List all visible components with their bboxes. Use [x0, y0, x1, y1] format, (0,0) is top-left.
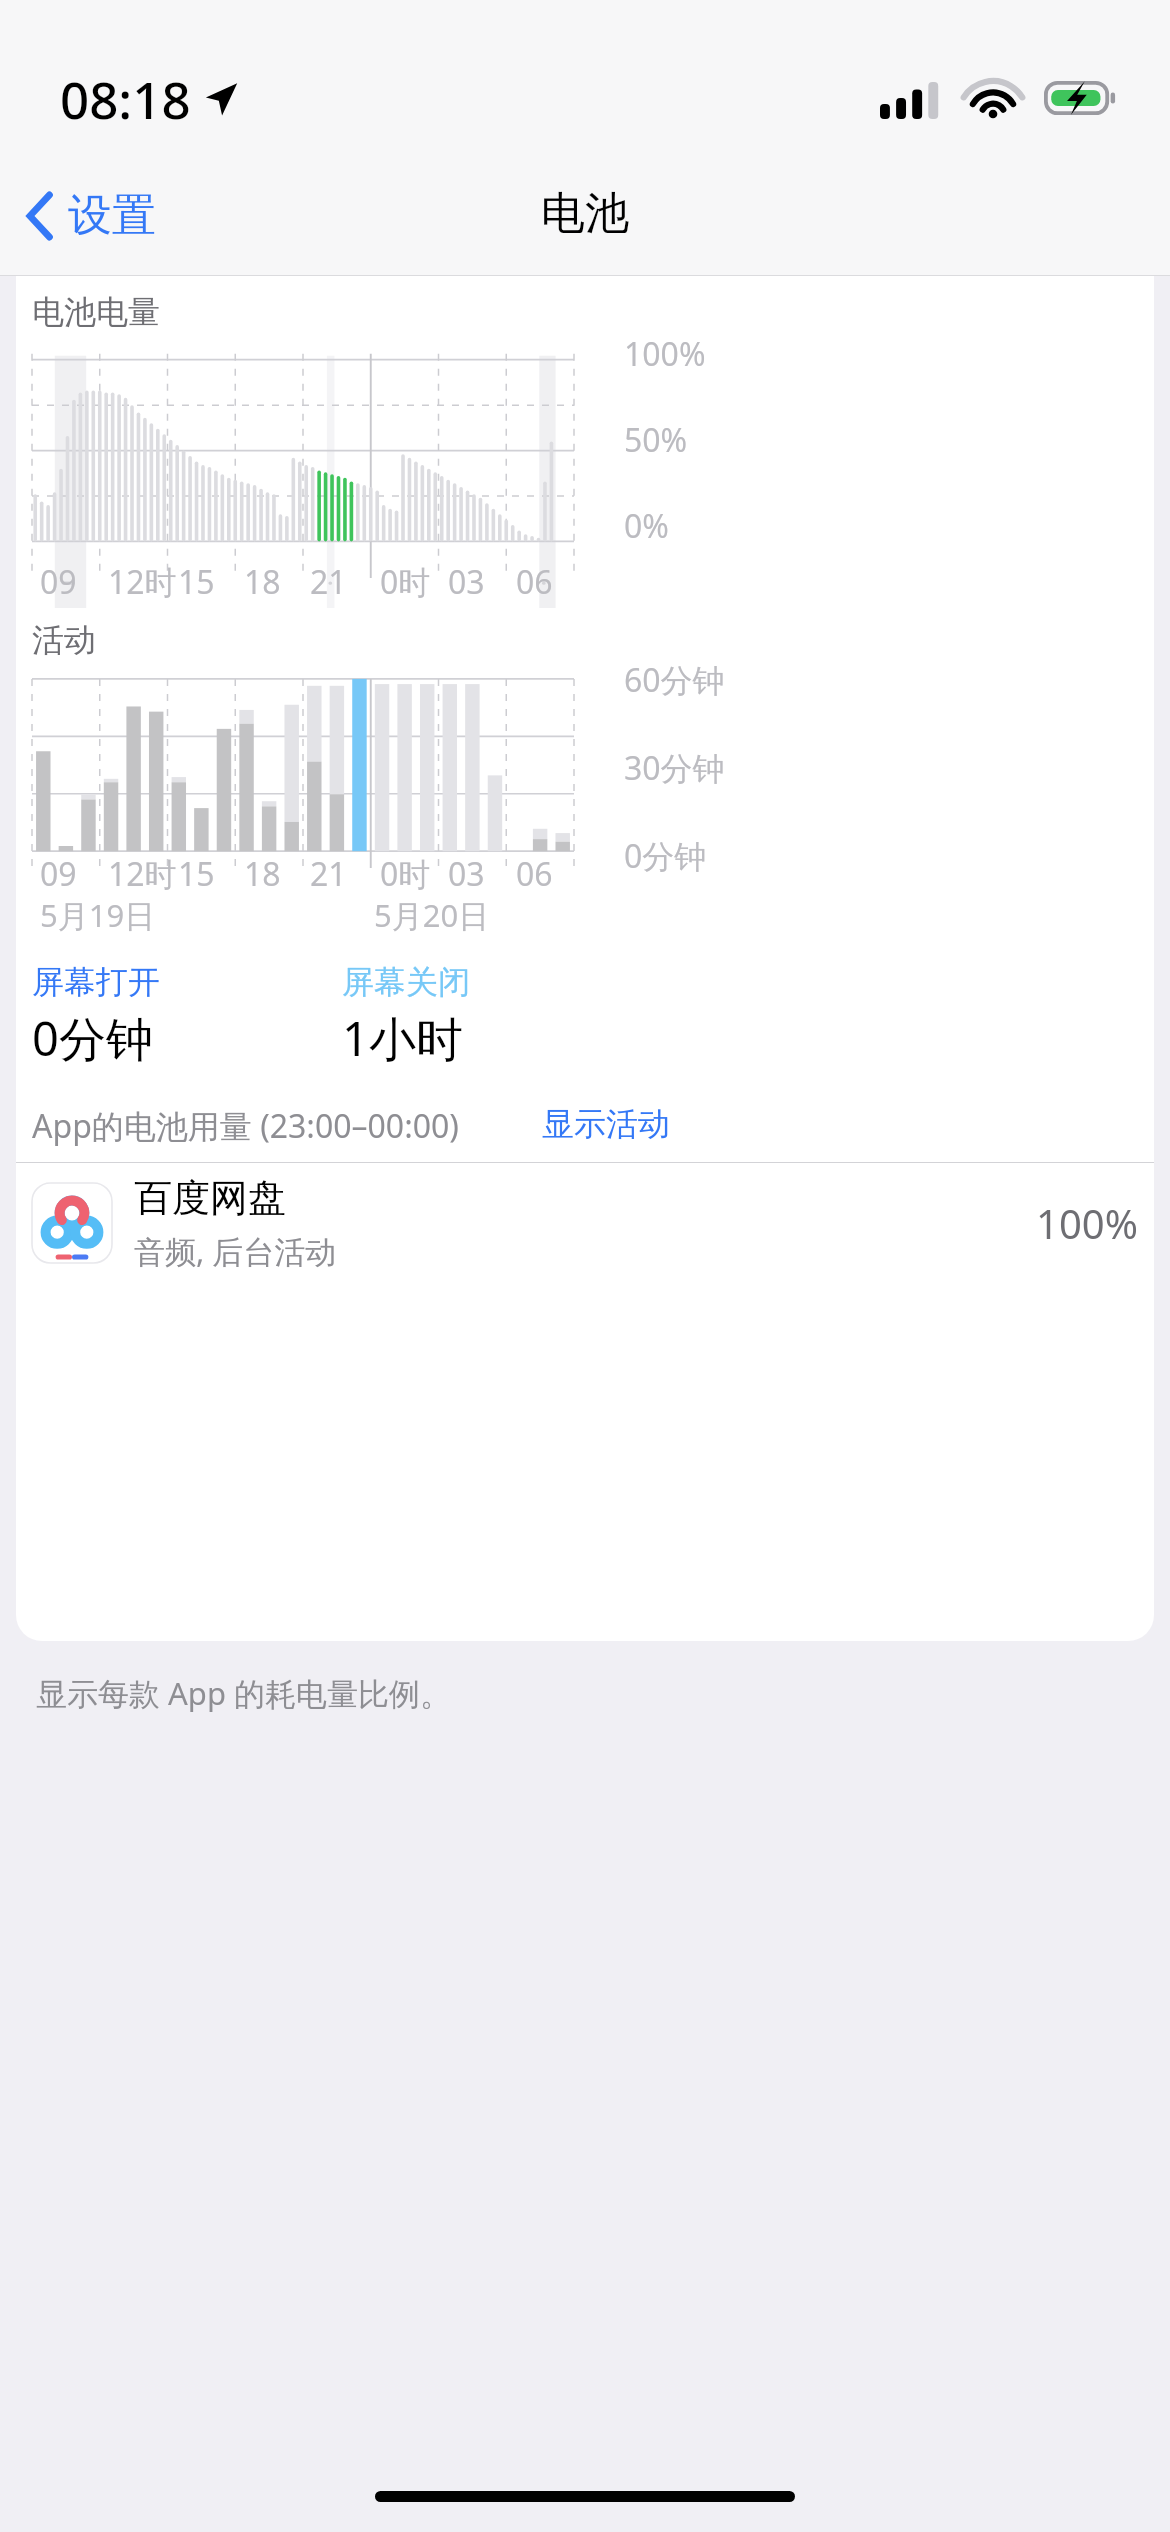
- staticText: 显示活动: [542, 1104, 670, 1144]
- staticText: 100%: [1036, 1196, 1138, 1250]
- staticText: 09: [40, 852, 77, 896]
- staticText: 09: [40, 560, 77, 604]
- staticText: 电池: [541, 186, 629, 241]
- staticText: 屏幕关闭: [342, 962, 470, 1002]
- button[interactable]: 显示活动: [534, 1096, 678, 1152]
- staticText: 0时: [380, 852, 431, 896]
- other: 百度网盘: [32, 1183, 112, 1263]
- staticText: App的电池用量 (23:00–00:00): [32, 1104, 459, 1148]
- staticText: 0分钟: [32, 1006, 153, 1070]
- staticText: 60分钟: [624, 658, 725, 702]
- staticText: 1小时: [342, 1006, 463, 1070]
- staticText: 活动: [32, 620, 96, 660]
- staticText: 100%: [624, 332, 706, 376]
- staticText: 06: [516, 852, 553, 896]
- staticText: 03: [448, 560, 485, 604]
- staticText: 0时: [380, 560, 431, 604]
- staticText: 显示每款 App 的耗电量比例。: [36, 1672, 452, 1714]
- staticText: 15: [178, 560, 215, 604]
- staticText: 电池电量: [32, 292, 160, 332]
- staticText: 屏幕打开: [32, 962, 160, 1002]
- button[interactable]: 设置: [16, 176, 166, 255]
- staticText: 03: [448, 852, 485, 896]
- staticText: 0%: [624, 504, 669, 548]
- staticText: 设置: [68, 188, 156, 243]
- staticText: 18: [244, 560, 281, 604]
- staticText: 0分钟: [624, 834, 707, 878]
- staticText: 30分钟: [624, 746, 725, 790]
- staticText: 08:18: [60, 64, 191, 133]
- staticText: 音频, 后台活动: [134, 1230, 337, 1272]
- staticText: 21: [310, 852, 347, 896]
- button[interactable]: 百度网盘: [16, 1163, 1154, 1283]
- staticText: 15: [178, 852, 215, 896]
- staticText: 12时: [108, 560, 177, 604]
- staticText: 5月19日: [40, 894, 156, 936]
- staticText: 12时: [108, 852, 177, 896]
- staticText: 5月20日: [374, 894, 490, 936]
- staticText: 50%: [624, 418, 688, 462]
- staticText: 百度网盘: [134, 1174, 286, 1222]
- staticText: 18: [244, 852, 281, 896]
- staticText: 21: [310, 560, 347, 604]
- staticText: 06: [516, 560, 553, 604]
